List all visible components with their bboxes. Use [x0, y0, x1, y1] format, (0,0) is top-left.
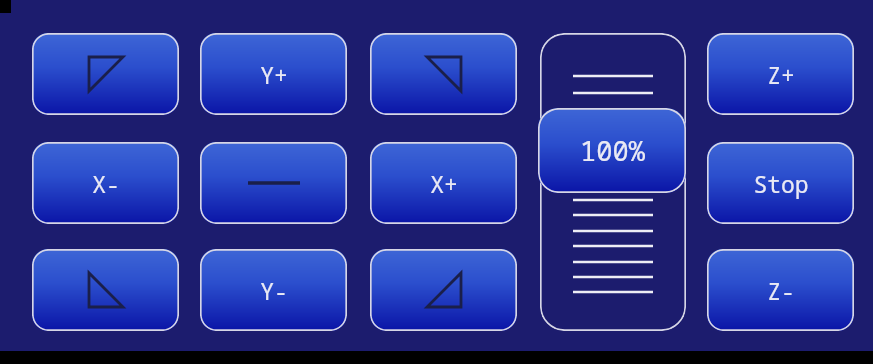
button[interactable]: Home — [200, 142, 347, 224]
staticText: Z+ — [767, 59, 795, 90]
button[interactable]: Speed slider — [540, 33, 686, 331]
staticText: Z- — [767, 275, 795, 306]
staticText: X- — [92, 168, 120, 199]
button[interactable]: Y- — [200, 249, 347, 331]
button[interactable]: Move up-right — [370, 33, 517, 115]
button[interactable]: Move down-right — [370, 249, 517, 331]
button[interactable]: 100% — [538, 108, 686, 193]
staticText: Y+ — [260, 59, 288, 90]
staticText: Stop — [753, 168, 809, 199]
button[interactable]: Y+ — [200, 33, 347, 115]
button[interactable]: X- — [32, 142, 179, 224]
button[interactable]: Move down-left — [32, 249, 179, 331]
button[interactable]: Z+ — [707, 33, 854, 115]
staticText: 100% — [580, 132, 645, 169]
staticText: X+ — [430, 168, 458, 199]
button[interactable]: Stop — [707, 142, 854, 224]
button[interactable]: Z- — [707, 249, 854, 331]
button[interactable]: X+ — [370, 142, 517, 224]
button[interactable]: Move up-left — [32, 33, 179, 115]
staticText: Y- — [260, 275, 288, 306]
